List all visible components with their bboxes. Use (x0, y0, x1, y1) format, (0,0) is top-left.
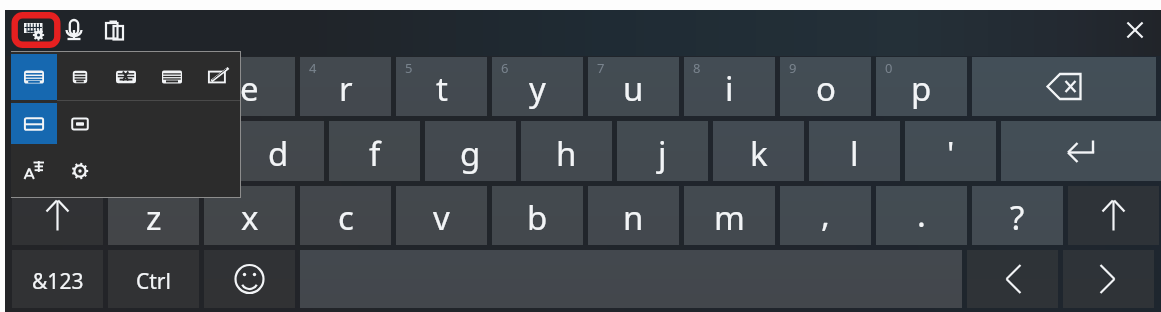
button[interactable]: Handwriting (195, 54, 240, 100)
button[interactable]: k (713, 121, 804, 181)
staticText: 1 (21, 59, 29, 77)
staticText: . (917, 192, 926, 237)
button[interactable]: Keyboard settings (19, 19, 53, 42)
staticText: Ctrl (136, 267, 171, 296)
staticText: x (241, 195, 259, 240)
button[interactable]: b (492, 186, 583, 245)
button[interactable]: v (396, 186, 487, 245)
button[interactable]: d (233, 121, 324, 181)
button[interactable]: , (780, 186, 871, 245)
button[interactable]: Full keyboard (11, 54, 57, 100)
staticText: k (750, 131, 768, 176)
button[interactable]: Language (11, 144, 57, 197)
staticText: 5 (405, 59, 413, 77)
button[interactable]: c (300, 186, 391, 245)
staticText: e (240, 66, 259, 111)
staticText: b (527, 195, 548, 240)
staticText: j (658, 131, 667, 176)
button[interactable]: ? (972, 186, 1063, 245)
staticText: f (369, 131, 381, 176)
button[interactable]: Up (1068, 186, 1159, 245)
button[interactable]: p (876, 57, 967, 116)
staticText: m (714, 195, 745, 240)
staticText: r (339, 66, 353, 111)
button[interactable]: Voice input (61, 12, 95, 47)
button[interactable]: h (521, 121, 612, 181)
staticText: z (146, 195, 162, 240)
button[interactable]: . (876, 186, 967, 245)
button[interactable]: Ctrl (108, 250, 199, 308)
button[interactable]: Enter (1001, 121, 1161, 181)
staticText: 4 (309, 59, 317, 77)
staticText: p (911, 66, 932, 111)
button[interactable]: g (425, 121, 516, 181)
button[interactable]: u (588, 57, 679, 116)
button[interactable]: &123 (12, 250, 103, 308)
button[interactable]: f (329, 121, 420, 181)
button[interactable]: ' (905, 121, 996, 181)
button[interactable]: Small keyboard (57, 54, 103, 100)
staticText: ? (1010, 195, 1025, 240)
button[interactable]: Clipboard (97, 12, 133, 47)
staticText: v (433, 195, 450, 240)
button[interactable]: Close keyboard (1115, 10, 1155, 50)
button[interactable]: z (108, 186, 199, 245)
staticText: 6 (501, 59, 509, 77)
button[interactable]: j (617, 121, 708, 181)
staticText: u (623, 66, 644, 111)
button[interactable]: w (108, 57, 199, 116)
button[interactable]: y (492, 57, 583, 116)
staticText: 2 (117, 59, 125, 77)
button[interactable]: Docked (11, 103, 57, 144)
button[interactable]: o (780, 57, 871, 116)
staticText: 3 (213, 59, 221, 77)
button[interactable]: Floating (57, 103, 103, 144)
button[interactable]: m (684, 186, 775, 245)
staticText: 7 (597, 59, 605, 77)
staticText: ' (947, 131, 955, 176)
button[interactable]: e (204, 57, 295, 116)
button[interactable]: Settings (57, 144, 103, 197)
staticText: q (47, 66, 68, 111)
button[interactable]: n (588, 186, 679, 245)
button[interactable]: x (204, 186, 295, 245)
button[interactable]: Backspace (972, 57, 1156, 116)
staticText: &123 (32, 267, 84, 296)
button[interactable]: Cursor left (967, 250, 1058, 308)
staticText: w (141, 66, 167, 111)
button[interactable]: Split keyboard (103, 54, 149, 100)
staticText: d (268, 131, 289, 176)
button[interactable]: Compact keyboard (149, 54, 195, 100)
button[interactable]: Emoji (204, 250, 295, 308)
staticText: t (436, 66, 448, 111)
button[interactable]: i (684, 57, 775, 116)
staticText: 9 (789, 59, 797, 77)
staticText: a (77, 131, 96, 176)
staticText: , (821, 192, 830, 237)
staticText: y (529, 66, 546, 111)
staticText: o (816, 66, 836, 111)
button[interactable]: a (41, 121, 132, 181)
staticText: n (623, 195, 644, 240)
staticText: l (850, 131, 859, 176)
button[interactable]: Cursor right (1063, 250, 1154, 308)
staticText: g (460, 131, 481, 176)
button[interactable]: l (809, 121, 900, 181)
button[interactable]: r (300, 57, 391, 116)
button[interactable]: q (12, 57, 103, 116)
staticText: h (556, 131, 577, 176)
staticText: 0 (885, 59, 893, 77)
button[interactable]: Shift (12, 186, 103, 245)
staticText: 8 (693, 59, 701, 77)
staticText: i (725, 66, 734, 111)
staticText: c (338, 195, 354, 240)
button[interactable]: t (396, 57, 487, 116)
